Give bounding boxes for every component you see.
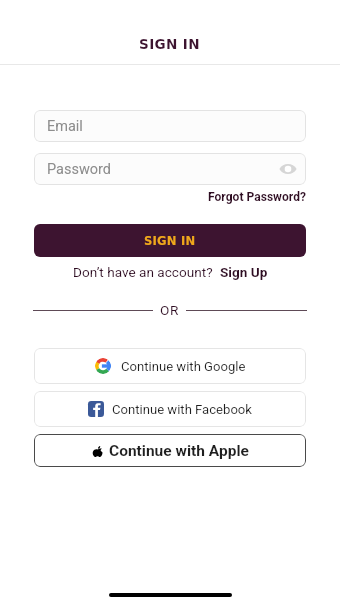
staticText: SIGN IN <box>139 36 201 52</box>
staticText: Don’t have an account? <box>73 264 220 280</box>
staticText: Continue with Apple <box>109 442 249 460</box>
button[interactable]: Continue with Google <box>34 348 306 384</box>
button[interactable]: Sign Up <box>220 264 268 280</box>
staticText: Email <box>47 118 83 135</box>
button[interactable]: Email <box>34 110 306 142</box>
button[interactable]: Show password <box>279 160 297 178</box>
button[interactable]: Continue with Apple <box>34 434 306 467</box>
button[interactable]: SIGN IN <box>34 224 306 257</box>
staticText: OR <box>160 302 179 318</box>
staticText: Continue with Facebook <box>112 402 252 417</box>
button[interactable]: Password <box>34 153 306 185</box>
button[interactable]: Forgot Password? <box>208 190 306 204</box>
staticText: SIGN IN <box>144 234 196 248</box>
staticText: Password <box>47 161 112 178</box>
staticText: Continue with Google <box>121 359 246 374</box>
button[interactable]: Continue with Facebook <box>34 391 306 427</box>
